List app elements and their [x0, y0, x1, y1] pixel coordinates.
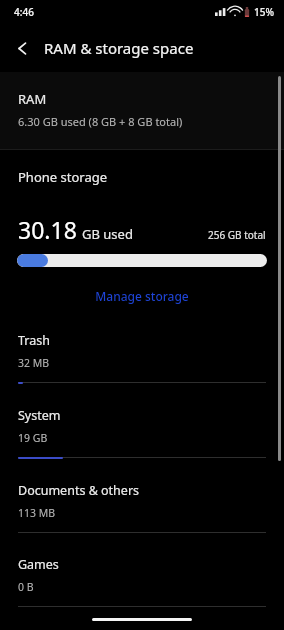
- staticText: Trash: [18, 332, 50, 349]
- button[interactable]: Games: [0, 552, 284, 608]
- button[interactable]: Documents & others: [0, 478, 284, 552]
- button[interactable]: Manage storage: [0, 288, 284, 304]
- staticText: RAM & storage space: [44, 38, 194, 58]
- button[interactable]: RAM: [0, 72, 284, 149]
- staticText: RAM: [18, 90, 47, 108]
- button[interactable]: Trash: [0, 328, 284, 403]
- staticText: GB used: [82, 225, 133, 243]
- staticText: 32 MB: [18, 356, 50, 370]
- staticText: 19 GB: [18, 431, 48, 445]
- button[interactable]: System: [0, 403, 284, 478]
- staticText: 113 MB: [18, 506, 56, 520]
- staticText: 4:46: [14, 5, 34, 19]
- staticText: 6.30 GB used (8 GB + 8 GB total): [18, 114, 183, 129]
- staticText: System: [18, 407, 61, 424]
- staticText: 15%: [254, 5, 274, 19]
- staticText: 0 B: [18, 580, 34, 594]
- staticText: 256 GB total: [208, 228, 266, 242]
- staticText: 30.18: [18, 214, 77, 245]
- staticText: Phone storage: [18, 168, 108, 186]
- button[interactable]: Back: [0, 26, 44, 70]
- staticText: Manage storage: [95, 288, 189, 304]
- staticText: Documents & others: [18, 482, 140, 499]
- staticText: Games: [18, 556, 59, 573]
